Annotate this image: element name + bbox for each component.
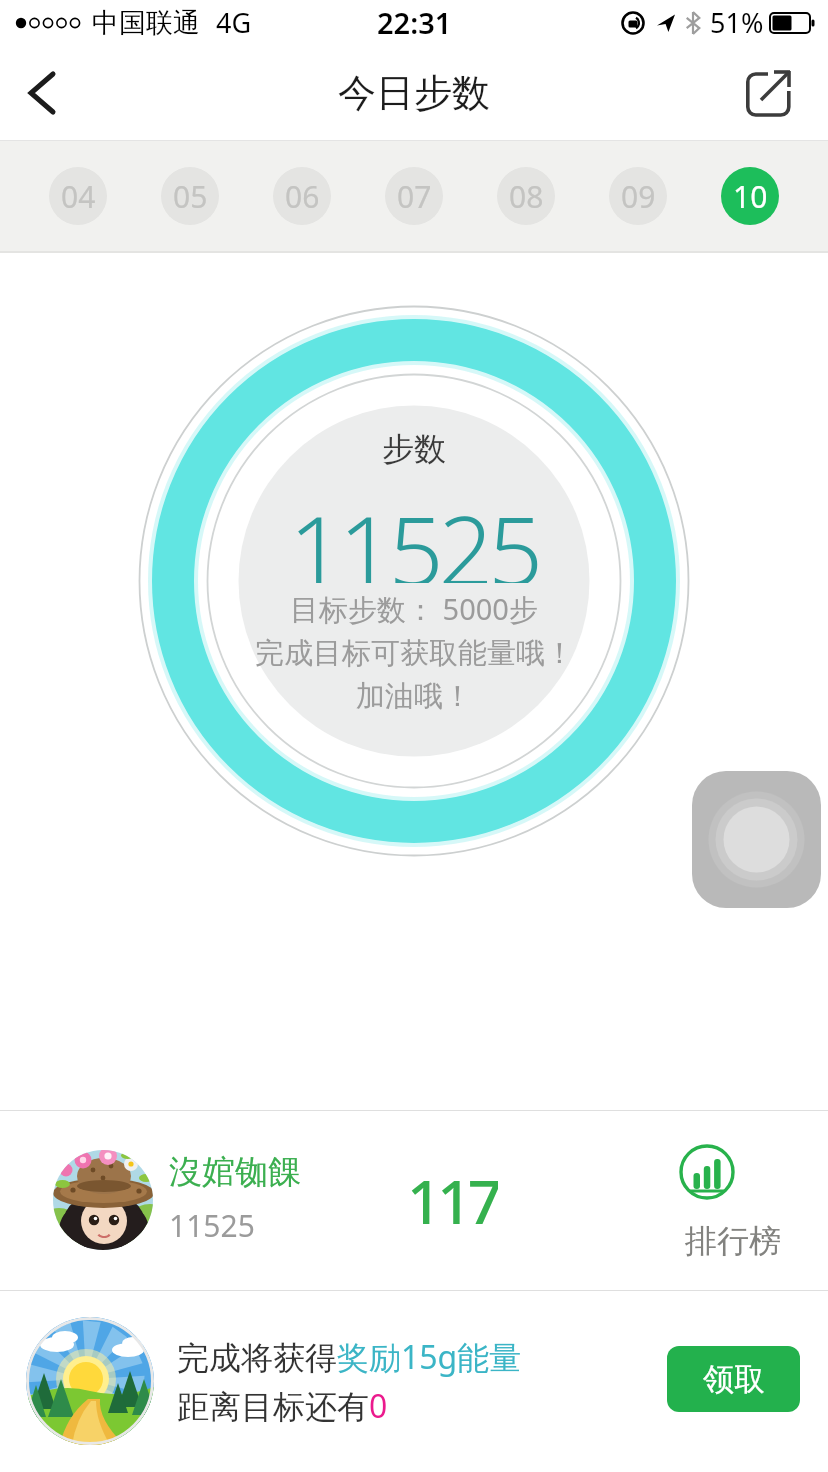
staticText: 22:31 [377,3,452,42]
staticText: 11525 [169,1205,255,1246]
staticText: 领取 [703,1360,765,1399]
staticText: 完成将获得奖励15g能量 [177,1335,522,1379]
staticText: 04 [61,176,96,217]
button[interactable]: 08 [497,167,555,225]
staticText: 05 [173,176,208,217]
button[interactable]: 04 [49,167,107,225]
button[interactable]: 09 [609,167,667,225]
staticText: 4G [216,4,252,41]
staticText: 11525 [289,483,539,583]
staticText: 完成目标可获取能量哦！ [255,635,574,672]
staticText: 09 [621,176,656,217]
staticText: 排行榜 [685,1221,781,1261]
staticText: 07 [397,176,432,217]
staticText: 08 [509,176,544,217]
button[interactable] [18,69,66,117]
button[interactable]: 10 [721,167,779,225]
staticText: 目标步数： 5000步 [290,589,538,629]
button[interactable] [742,65,798,121]
staticText: 117 [407,1160,498,1240]
button[interactable]: 06 [273,167,331,225]
button[interactable]: 沒婠铷餜 [0,1110,828,1290]
staticText: 加油哦！ [356,678,472,715]
button[interactable]: 领取 [667,1346,800,1412]
staticText: 10 [733,176,768,217]
staticText: 06 [285,176,320,217]
button[interactable] [692,771,821,908]
staticText: 今日步数 [338,69,490,117]
button[interactable]: 07 [385,167,443,225]
staticText: 中国联通 [92,6,200,40]
staticText: 51% [710,4,764,41]
staticText: 沒婠铷餜 [169,1151,301,1193]
staticText: 距离目标还有0 [177,1384,388,1428]
staticText: 步数 [382,429,446,469]
button[interactable]: 05 [161,167,219,225]
